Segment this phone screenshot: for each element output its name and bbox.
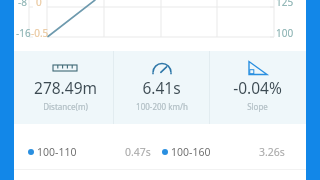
staticText: Distance(m) <box>43 101 88 112</box>
other: 100-200 km/h <box>149 57 175 77</box>
button[interactable]: Distance(m) <box>17 51 113 124</box>
other: Distance(m) <box>52 57 78 77</box>
staticText: 0 <box>36 0 42 9</box>
other: Slope <box>245 57 271 77</box>
button[interactable]: Slope <box>210 51 305 124</box>
staticText: -8 <box>18 0 27 9</box>
staticText: 100 <box>276 26 294 40</box>
staticText: -0.04% <box>233 77 282 98</box>
button[interactable]: 100-200 km/h <box>114 51 209 124</box>
staticText: -0.5 <box>31 26 49 40</box>
staticText: Slope <box>247 101 268 112</box>
staticText: 100-200 km/h <box>136 101 188 112</box>
staticText: 100-110 <box>37 145 77 159</box>
staticText: 0.47s <box>125 145 151 159</box>
staticText: -16 <box>16 26 31 40</box>
staticText: 100-160 <box>171 145 211 159</box>
staticText: 125 <box>276 0 294 9</box>
staticText: 6.41s <box>142 77 181 98</box>
staticText: 3.26s <box>259 145 285 159</box>
button[interactable]: 100-110 <box>14 134 306 169</box>
staticText: 278.49m <box>34 77 97 98</box>
